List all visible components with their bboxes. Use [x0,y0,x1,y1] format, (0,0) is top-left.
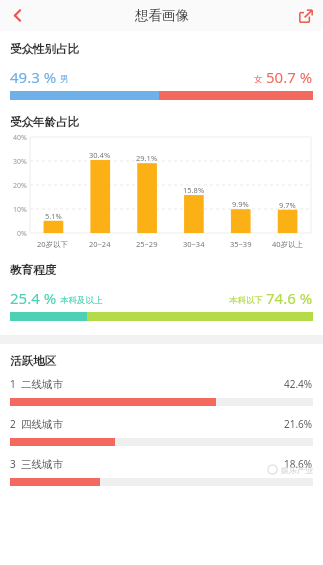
staticText: 想看画像 [135,7,189,24]
staticText: 20% [13,181,27,191]
staticText: 21.6% [284,417,313,431]
staticText: 3 [10,457,16,471]
staticText: 5.1% [45,211,62,221]
staticText: 本科以下 [229,295,263,306]
staticText: 30% [13,157,27,167]
staticText: 42.4% [284,377,313,391]
staticText: 三线城市 [21,458,63,471]
staticText: 25~29 [136,239,158,249]
staticText: 2 [10,417,16,431]
staticText: 25.4 % [10,288,57,308]
staticText: 娱乐产业 [281,465,313,475]
staticText: 29.1% [136,153,158,163]
staticText: 30~34 [183,239,205,249]
staticText: 40% [13,133,27,143]
button[interactable]: 1 [0,377,323,417]
staticText: 50.7 % [266,67,313,87]
staticText: 20岁以下 [37,239,69,249]
staticText: 本科及以上 [60,295,103,306]
staticText: 四线城市 [21,418,63,431]
button[interactable]: Share [289,0,323,31]
staticText: 男 [60,74,69,85]
staticText: 女 [254,74,263,85]
staticText: 1 [10,377,16,391]
staticText: 15.8% [183,185,205,195]
staticText: 受众年龄占比 [10,115,79,129]
staticText: 40岁以上 [272,239,304,249]
staticText: 18.6% [284,457,313,471]
staticText: 二线城市 [21,378,63,391]
staticText: 20~24 [89,239,111,249]
staticText: 30.4% [89,150,111,160]
staticText: 受众性别占比 [10,42,79,56]
staticText: 0% [17,229,27,239]
staticText: 活跃地区 [10,354,56,368]
button[interactable]: 2 [0,417,323,457]
staticText: 教育程度 [10,263,56,277]
button[interactable]: Back [0,0,34,31]
staticText: 9.7% [279,200,296,210]
staticText: 9.9% [232,199,249,209]
button[interactable]: 3 [0,457,323,497]
staticText: 35~39 [230,239,252,249]
staticText: 49.3 % [10,67,57,87]
staticText: 74.6 % [266,288,313,308]
staticText: 10% [13,205,27,215]
